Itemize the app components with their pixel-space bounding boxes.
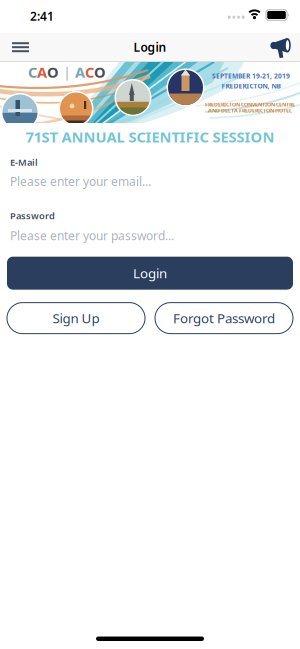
staticText: O [94, 62, 106, 82]
staticText: Please enter your email... [10, 173, 151, 189]
staticText: | [59, 62, 75, 82]
button[interactable] [3, 33, 39, 61]
staticText: Password [10, 209, 55, 222]
button[interactable]: Forgot Password [155, 303, 293, 334]
staticText: FREDERICTON, NB [221, 82, 280, 90]
staticText: 2:41 [30, 8, 54, 24]
staticText: A [75, 62, 85, 82]
staticText: Login [133, 39, 166, 55]
staticText: AND DELTA FREDERICTON HOTEL [208, 107, 292, 114]
button[interactable]: Login [7, 257, 293, 290]
staticText: O [47, 62, 59, 82]
staticText: C [85, 62, 94, 82]
staticText: Forgot Password [173, 309, 275, 327]
staticText: A [37, 62, 47, 82]
staticText: Login [133, 264, 167, 282]
staticText: E-Mail [10, 156, 38, 168]
staticText: C [28, 62, 37, 82]
staticText: 71ST ANNUAL SCIENTIFIC SESSION [25, 127, 274, 146]
button[interactable]: Please enter your password... [0, 222, 300, 244]
staticText: FREDERICTON CONVENTION CENTRE [205, 101, 295, 108]
staticText: SEPTEMBER 19-21, 2019 [212, 72, 290, 80]
button[interactable]: Please enter your email... [0, 168, 300, 189]
button[interactable]: Sign Up [7, 303, 145, 334]
button[interactable] [256, 33, 296, 61]
staticText: Please enter your password... [10, 228, 174, 244]
staticText: Sign Up [52, 309, 99, 327]
